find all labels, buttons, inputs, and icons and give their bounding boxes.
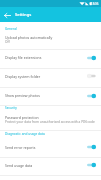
staticText: Off <box>5 40 10 44</box>
staticText: 18:06 <box>91 2 99 6</box>
button[interactable]: Upload photos automatically <box>0 30 101 48</box>
button[interactable]: Display system folder <box>0 66 101 86</box>
staticText: Diagnostic and usage data <box>5 132 45 136</box>
staticText: Password protection <box>5 115 39 120</box>
staticText: Show preview photos <box>5 93 40 98</box>
staticText: Display file extensions <box>5 55 42 60</box>
staticText: Upload photos automatically <box>5 35 53 40</box>
button[interactable]: Show preview photos <box>0 86 101 105</box>
staticText: General <box>5 27 17 31</box>
staticText: Display system folder <box>5 74 41 79</box>
button[interactable]: Password protection <box>0 110 101 128</box>
staticText: Security <box>5 106 17 110</box>
button[interactable]: Send error reports <box>0 138 101 156</box>
button[interactable]: Display file extensions <box>0 48 101 67</box>
button[interactable]: Back <box>2 10 12 20</box>
staticText: Send usage data <box>5 163 33 168</box>
staticText: Protect your data from unauthorized acce… <box>5 120 95 124</box>
staticText: Settings <box>15 12 32 18</box>
staticText: Send error reports <box>5 145 36 150</box>
button[interactable]: Send usage data <box>0 156 101 174</box>
